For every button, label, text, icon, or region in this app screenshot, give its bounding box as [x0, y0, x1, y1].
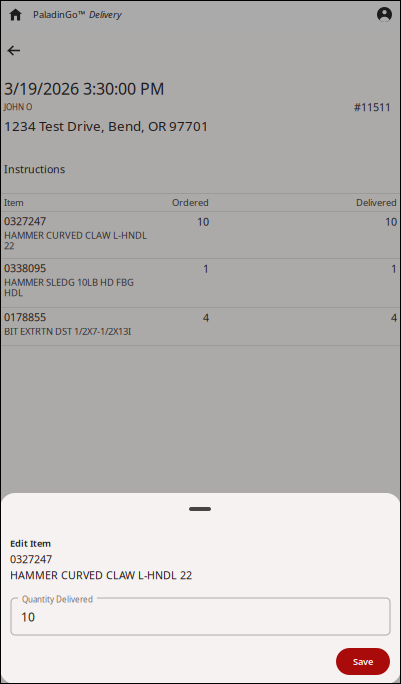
staticText: 0178855 [4, 310, 46, 324]
staticText: 1 [391, 261, 397, 276]
staticText: HAMMER CURVED CLAW L-HNDL 22 [10, 568, 192, 582]
staticText: #11511 [354, 100, 391, 114]
staticText: Edit Item [10, 537, 51, 549]
button[interactable]: Home [0, 0, 33, 29]
staticText: 0338095 [4, 261, 46, 275]
staticText: 0327247 [4, 214, 46, 228]
button[interactable]: Account [377, 0, 401, 29]
staticText: Save [353, 655, 373, 668]
staticText: HAMMER CURVED CLAW L-HNDL [4, 229, 147, 241]
staticText: 0327247 [10, 552, 52, 566]
staticText: HDL [4, 286, 23, 299]
staticText: Delivery [85, 8, 121, 21]
staticText: 10 [197, 214, 209, 229]
staticText: 22 [4, 239, 14, 252]
staticText: 1 [203, 261, 209, 276]
staticText: JOHN O [4, 102, 32, 112]
staticText: HAMMER SLEDG 10LB HD FBG [4, 276, 134, 288]
staticText: Delivered [356, 196, 397, 209]
staticText: Quantity Delivered [22, 594, 93, 605]
staticText: 4 [203, 310, 209, 325]
staticText: Instructions [4, 162, 65, 176]
staticText: Ordered [172, 196, 209, 209]
staticText: 10 [21, 609, 35, 625]
button[interactable]: Save [336, 648, 390, 675]
staticText: 1234 Test Drive, Bend, OR 97701 [4, 117, 209, 135]
staticText: BIT EXTRTN DST 1/2X7-1/2X13I [4, 325, 131, 337]
staticText: 10 [385, 214, 397, 229]
button[interactable]: Back [0, 33, 35, 73]
staticText: 4 [391, 310, 397, 325]
staticText: Item [4, 196, 24, 209]
staticText: PaladinGo™ [33, 8, 85, 21]
staticText: 3/19/2026 3:30:00 PM [4, 78, 165, 99]
